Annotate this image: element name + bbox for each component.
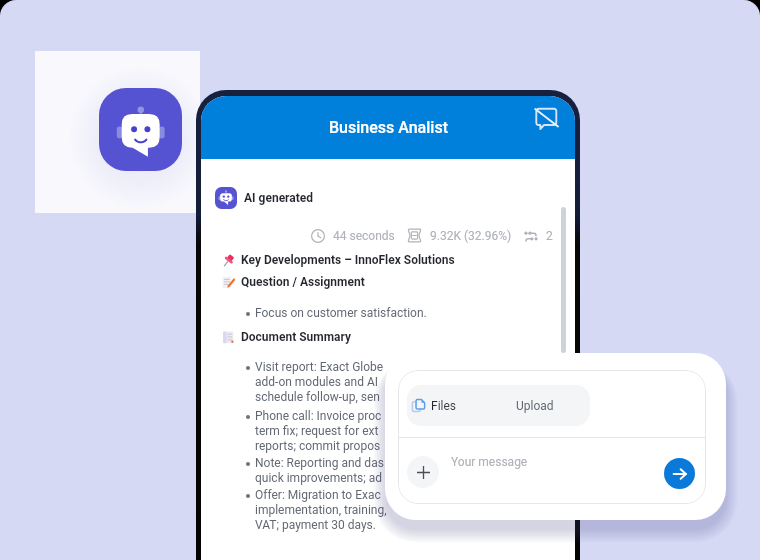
- staticText: Upload: [516, 399, 554, 413]
- button[interactable]: Send message: [664, 458, 695, 489]
- button[interactable]: Files: [407, 385, 590, 426]
- button[interactable]: Hide chat: [529, 102, 563, 136]
- staticText: Note: Reporting and das quick improvemen…: [255, 455, 384, 485]
- staticText: AI generated: [244, 191, 314, 205]
- staticText: Focus on customer satisfaction.: [255, 305, 427, 320]
- staticText: Question / Assignment: [241, 275, 365, 289]
- staticText: 44 seconds: [333, 229, 395, 243]
- staticText: Document Summary: [241, 330, 352, 344]
- staticText: Offer: Migration to Exac implementation,…: [255, 487, 387, 532]
- staticText: 2: [546, 229, 553, 243]
- staticText: Visit report: Exact Globe add-on modules…: [255, 359, 384, 404]
- staticText: Business Analist: [329, 118, 448, 137]
- staticText: Your message: [451, 455, 528, 469]
- button[interactable]: Add attachment: [407, 456, 439, 488]
- staticText: Phone call: Invoice proc term fix; reque…: [255, 408, 382, 453]
- staticText: Files: [431, 399, 457, 413]
- staticText: Key Developments – InnoFlex Solutions: [241, 253, 455, 267]
- staticText: 9.32K (32.96%): [430, 229, 512, 243]
